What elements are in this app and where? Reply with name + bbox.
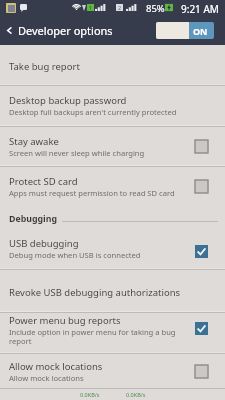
staticText: Screen will never sleep while charging	[9, 148, 145, 158]
button[interactable]: Power menu bug reports	[0, 313, 225, 352]
button[interactable]: Desktop backup password	[0, 86, 225, 125]
button[interactable]: Protect SD card	[0, 167, 225, 206]
staticText: Take bug report	[9, 60, 80, 73]
button[interactable]: ON	[156, 22, 214, 39]
staticText: Desktop full backups aren't currently pr…	[9, 107, 177, 117]
staticText: Developer options	[18, 23, 113, 38]
staticText: 0.0KB/s	[80, 391, 100, 398]
button[interactable]: Developer options	[0, 16, 117, 45]
staticText: 0.0KB/s	[126, 391, 146, 398]
button[interactable]: Stay awake	[0, 127, 225, 165]
staticText: 9:21 AM	[181, 2, 219, 16]
staticText: ON	[193, 25, 208, 37]
staticText: Power menu bug reports	[9, 314, 121, 327]
staticText: 1	[89, 4, 93, 11]
staticText: USB debugging	[9, 237, 79, 250]
staticText: Protect SD card	[9, 175, 78, 188]
staticText: Allow mock locations	[9, 373, 84, 383]
staticText: Debugging	[9, 213, 57, 225]
button[interactable]: Unchecked	[195, 180, 208, 193]
staticText: 2	[118, 4, 122, 11]
staticText: Include option in power menu for taking …	[9, 327, 189, 347]
button[interactable]: Allow mock locations	[0, 354, 225, 388]
button[interactable]: Take bug report	[0, 45, 225, 84]
button[interactable]: Unchecked	[195, 365, 208, 378]
staticText: Debug mode when USB is connected	[9, 250, 141, 260]
staticText: Apps must request permission to read SD …	[9, 188, 175, 198]
staticText: Desktop backup password	[9, 94, 127, 107]
button[interactable]: Unchecked	[195, 140, 208, 153]
button[interactable]: Checked	[195, 322, 208, 335]
staticText: 85%	[146, 2, 165, 15]
button[interactable]: Checked	[195, 245, 208, 258]
staticText: Allow mock locations	[9, 360, 103, 373]
button[interactable]: Revoke USB debugging authorizations	[0, 270, 225, 311]
staticText: Revoke USB debugging authorizations	[9, 286, 181, 299]
staticText: Stay awake	[9, 135, 59, 148]
button[interactable]: USB debugging	[0, 228, 225, 268]
